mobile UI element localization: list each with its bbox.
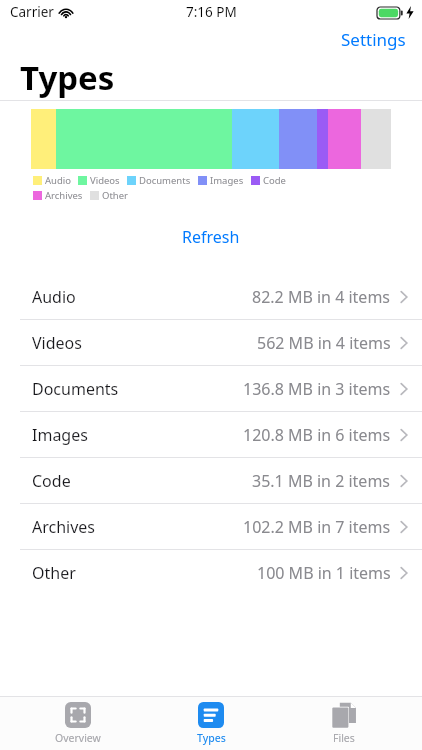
staticText: Settings — [341, 28, 406, 50]
button[interactable]: Types — [156, 697, 266, 750]
staticText: 7:16 PM — [186, 3, 237, 21]
staticText: Audio — [32, 286, 76, 308]
staticText: Code — [263, 174, 286, 187]
staticText: 100 MB in 1 items — [257, 562, 391, 584]
other: Types — [198, 702, 224, 728]
staticText: Videos — [90, 174, 120, 187]
button[interactable]: Videos — [0, 320, 422, 365]
button[interactable]: Other — [0, 550, 422, 595]
staticText: Other — [102, 189, 129, 202]
button[interactable]: Refresh — [164, 222, 258, 252]
staticText: Documents — [139, 174, 191, 187]
staticText: Audio — [45, 174, 71, 187]
staticText: Refresh — [182, 226, 240, 248]
button[interactable]: Archives — [0, 504, 422, 549]
button[interactable]: Audio — [0, 274, 422, 319]
staticText: Archives — [32, 516, 96, 538]
button[interactable]: Code — [0, 458, 422, 503]
staticText: Documents — [32, 378, 119, 400]
staticText: Images — [210, 174, 244, 187]
staticText: 82.2 MB in 4 items — [252, 286, 391, 308]
staticText: Videos — [32, 332, 82, 354]
staticText: Other — [32, 562, 76, 584]
staticText: Types — [20, 55, 115, 100]
other: Overview — [65, 702, 91, 728]
staticText: Files — [333, 731, 355, 745]
staticText: Carrier — [10, 3, 54, 21]
staticText: Overview — [55, 731, 101, 745]
staticText: 562 MB in 4 items — [257, 332, 391, 354]
staticText: 136.8 MB in 3 items — [243, 378, 391, 400]
staticText: Archives — [45, 189, 83, 202]
button[interactable]: Overview — [23, 697, 133, 750]
staticText: 102.2 MB in 7 items — [243, 516, 391, 538]
staticText: 120.8 MB in 6 items — [243, 424, 391, 446]
button[interactable]: Documents — [0, 366, 422, 411]
button[interactable]: Files — [289, 697, 399, 750]
staticText: 35.1 MB in 2 items — [252, 470, 391, 492]
button[interactable]: Images — [0, 412, 422, 457]
staticText: Code — [32, 470, 71, 492]
staticText: Types — [197, 731, 226, 745]
other: Files — [331, 702, 357, 728]
staticText: Images — [32, 424, 88, 446]
button[interactable]: Settings — [325, 24, 422, 54]
